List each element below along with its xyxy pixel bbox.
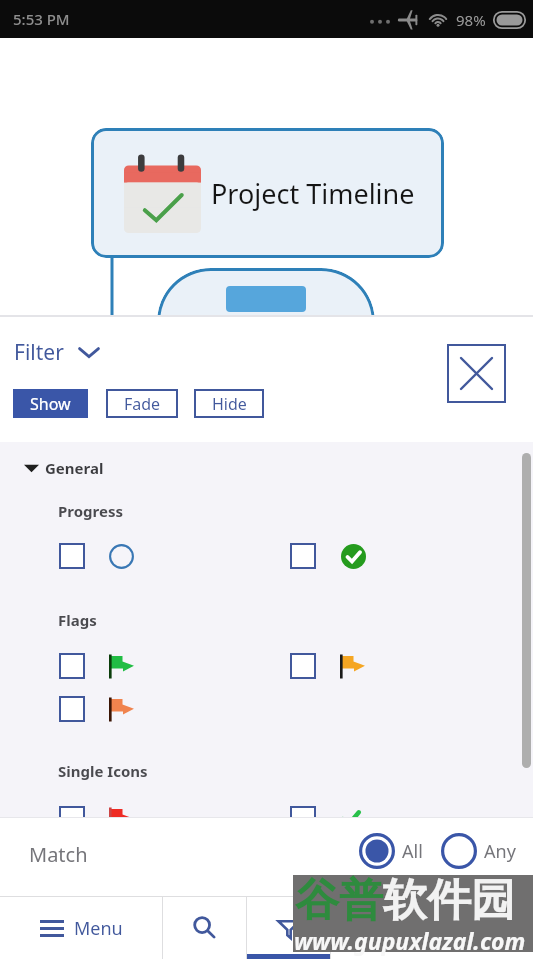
button[interactable]: Checkbox (59, 543, 85, 569)
button[interactable]: Checkbox (290, 806, 316, 832)
staticText: Show (30, 393, 71, 415)
staticText: 5:53 PM (13, 9, 70, 29)
button[interactable]: Any (441, 833, 516, 869)
staticText: Hide (212, 393, 247, 415)
button[interactable]: Show (13, 389, 88, 418)
button[interactable]: Checkbox (290, 653, 316, 679)
button[interactable]: Filter (14, 338, 100, 367)
button[interactable]: Menu (0, 897, 162, 959)
button[interactable]: All (359, 833, 423, 869)
button[interactable]: More (331, 897, 533, 959)
staticText: www.gupuxlazal.com (294, 925, 526, 956)
button[interactable]: Filter (247, 897, 330, 959)
button[interactable]: Checkbox (59, 806, 85, 832)
button[interactable] (157, 268, 375, 316)
button[interactable]: Close (447, 344, 506, 403)
staticText: Fade (124, 393, 161, 415)
staticText: Menu (74, 916, 123, 941)
staticText: Single Icons (58, 761, 148, 781)
staticText: Progress (58, 501, 123, 521)
button[interactable]: Project Timeline (91, 128, 444, 258)
button[interactable]: Checkbox (290, 543, 316, 569)
staticText: 谷普 (295, 873, 383, 928)
button[interactable]: Search (163, 897, 246, 959)
staticText: 软件园 (383, 873, 515, 928)
staticText: General (45, 458, 104, 478)
staticText: Project Timeline (211, 175, 415, 212)
button[interactable]: Checkbox (59, 696, 85, 722)
button[interactable]: Checkbox (59, 653, 85, 679)
staticText: Filter (14, 338, 64, 367)
button[interactable]: Fade (106, 389, 178, 418)
staticText: Flags (58, 610, 97, 630)
staticText: 98% (456, 10, 486, 30)
staticText: Any (484, 839, 516, 864)
staticText: All (402, 839, 423, 864)
staticText: Match (29, 841, 88, 868)
button[interactable]: General (24, 458, 104, 478)
button[interactable]: Hide (194, 389, 264, 418)
